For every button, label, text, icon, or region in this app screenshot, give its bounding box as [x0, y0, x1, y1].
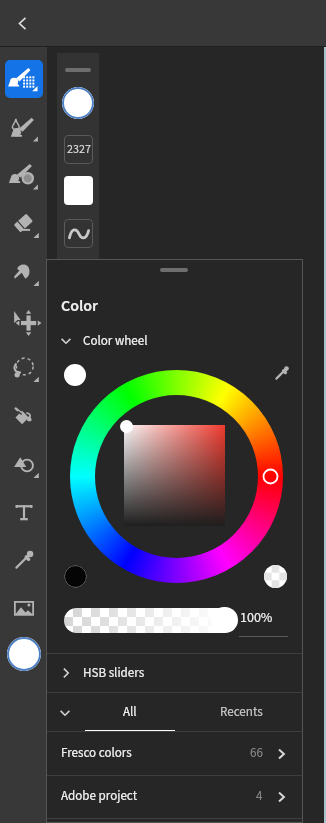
staticText: Color: [61, 295, 99, 318]
staticText: 2327: [67, 141, 91, 158]
button[interactable]: All: [85, 693, 175, 732]
staticText: Recents: [220, 703, 263, 722]
button[interactable]: Fresco colors: [46, 732, 303, 775]
button[interactable]: Eyedropper: [268, 359, 296, 387]
button[interactable]: Tool 3: [5, 157, 43, 195]
staticText: 100%: [240, 608, 273, 628]
staticText: Fresco colors: [61, 744, 132, 763]
button[interactable]: White: [64, 364, 86, 386]
button[interactable]: Opacity: [64, 608, 236, 634]
button[interactable]: Tool 11: [5, 541, 43, 579]
button[interactable]: Brush tool: [5, 60, 43, 98]
staticText: 4: [256, 787, 263, 806]
button[interactable]: Brush size: [62, 87, 94, 119]
button[interactable]: Tool 12: [5, 589, 43, 627]
staticText: Adobe project: [61, 787, 138, 806]
button[interactable]: Tool 2: [5, 109, 43, 147]
button[interactable]: Color swatch: [64, 176, 93, 205]
button[interactable]: Tool 9: [5, 445, 43, 483]
button[interactable]: 2327: [64, 135, 93, 164]
button[interactable]: Back: [0, 0, 45, 46]
button[interactable]: Recents: [196, 693, 286, 732]
staticText: Color wheel: [83, 332, 148, 351]
button[interactable]: Tool 5: [5, 253, 43, 291]
button[interactable]: Collapse palettes: [46, 693, 84, 732]
staticText: 66: [250, 744, 263, 763]
button[interactable]: Transparent: [264, 565, 287, 588]
button[interactable]: Current color: [7, 637, 41, 671]
button[interactable]: Tool 4: [5, 205, 43, 243]
button[interactable]: Adobe project: [46, 775, 303, 818]
button[interactable]: Tool 10: [5, 493, 43, 531]
button[interactable]: Tool 6: [5, 301, 43, 339]
button[interactable]: Tool 7: [5, 349, 43, 387]
staticText: HSB sliders: [83, 664, 145, 683]
button[interactable]: Color wheel: [58, 329, 148, 353]
button[interactable]: Tool 8: [5, 397, 43, 435]
button[interactable]: Black: [64, 565, 87, 588]
staticText: All: [123, 703, 137, 722]
button[interactable]: HSB sliders: [46, 654, 303, 692]
button[interactable]: Smoothing: [64, 219, 93, 248]
